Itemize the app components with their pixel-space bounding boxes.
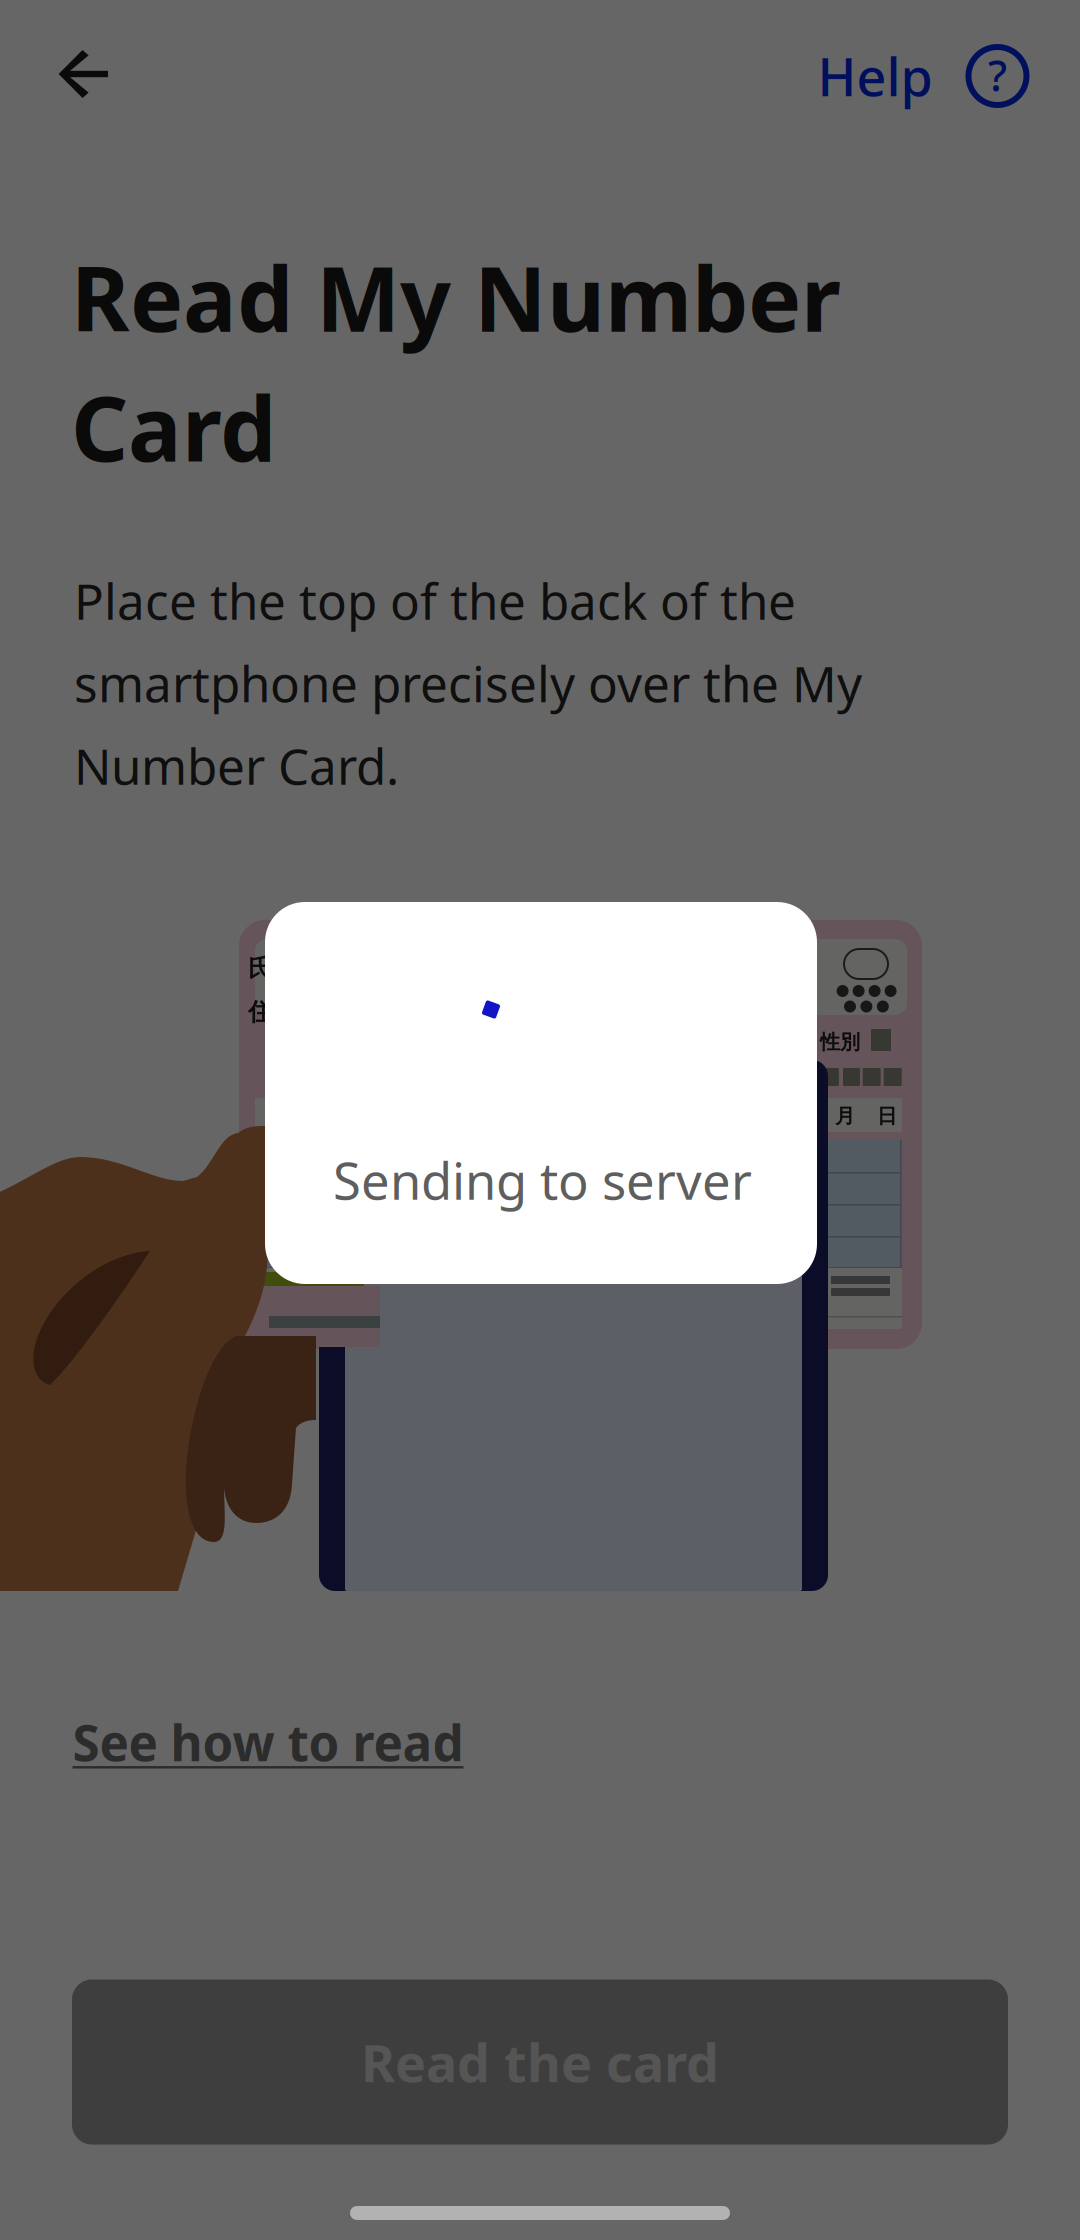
staticText: 月 bbox=[835, 1104, 855, 1128]
staticText: Sending to server bbox=[333, 1146, 752, 1214]
staticText: Place the top of the back of the smartph… bbox=[74, 568, 862, 798]
button[interactable]: Back bbox=[33, 23, 135, 125]
button[interactable]: See how to read bbox=[58, 1693, 477, 1791]
button[interactable]: Read the card bbox=[72, 1979, 1008, 2144]
staticText: ? bbox=[988, 47, 1007, 103]
staticText: 住 bbox=[248, 997, 272, 1027]
staticText: Read the card bbox=[361, 2027, 719, 2097]
staticText: See how to read bbox=[72, 1709, 463, 1775]
staticText: 性別 bbox=[820, 1030, 860, 1054]
staticText: Read My Number Card bbox=[71, 238, 841, 486]
staticText: 氏 bbox=[248, 953, 272, 983]
staticText: 日 bbox=[877, 1104, 897, 1128]
staticText: Help bbox=[817, 41, 932, 111]
button[interactable]: Help bbox=[793, 15, 1056, 137]
